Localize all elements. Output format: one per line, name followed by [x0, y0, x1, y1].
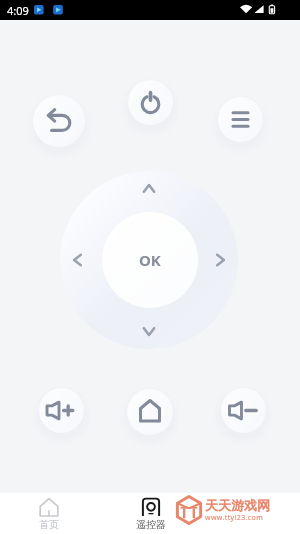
staticText: www.ttyl23.com — [205, 513, 264, 523]
button[interactable]: Back — [33, 95, 85, 147]
button[interactable]: 首页 — [29, 498, 69, 531]
staticText: 遥控器 — [136, 518, 166, 531]
staticText: 4:09 — [7, 3, 29, 18]
other: Direction pad — [60, 171, 238, 349]
staticText: 首页 — [39, 518, 59, 531]
button[interactable]: OK — [102, 212, 198, 308]
staticText: OK — [139, 250, 161, 270]
button[interactable]: Volume up — [39, 388, 84, 433]
button[interactable]: Home — [127, 389, 173, 435]
button[interactable]: Volume down — [221, 388, 266, 433]
staticText: 天天游戏网 — [205, 497, 270, 513]
button[interactable]: Menu — [218, 97, 263, 142]
button[interactable]: Power — [128, 80, 173, 125]
button[interactable]: 遥控器 — [131, 498, 171, 531]
